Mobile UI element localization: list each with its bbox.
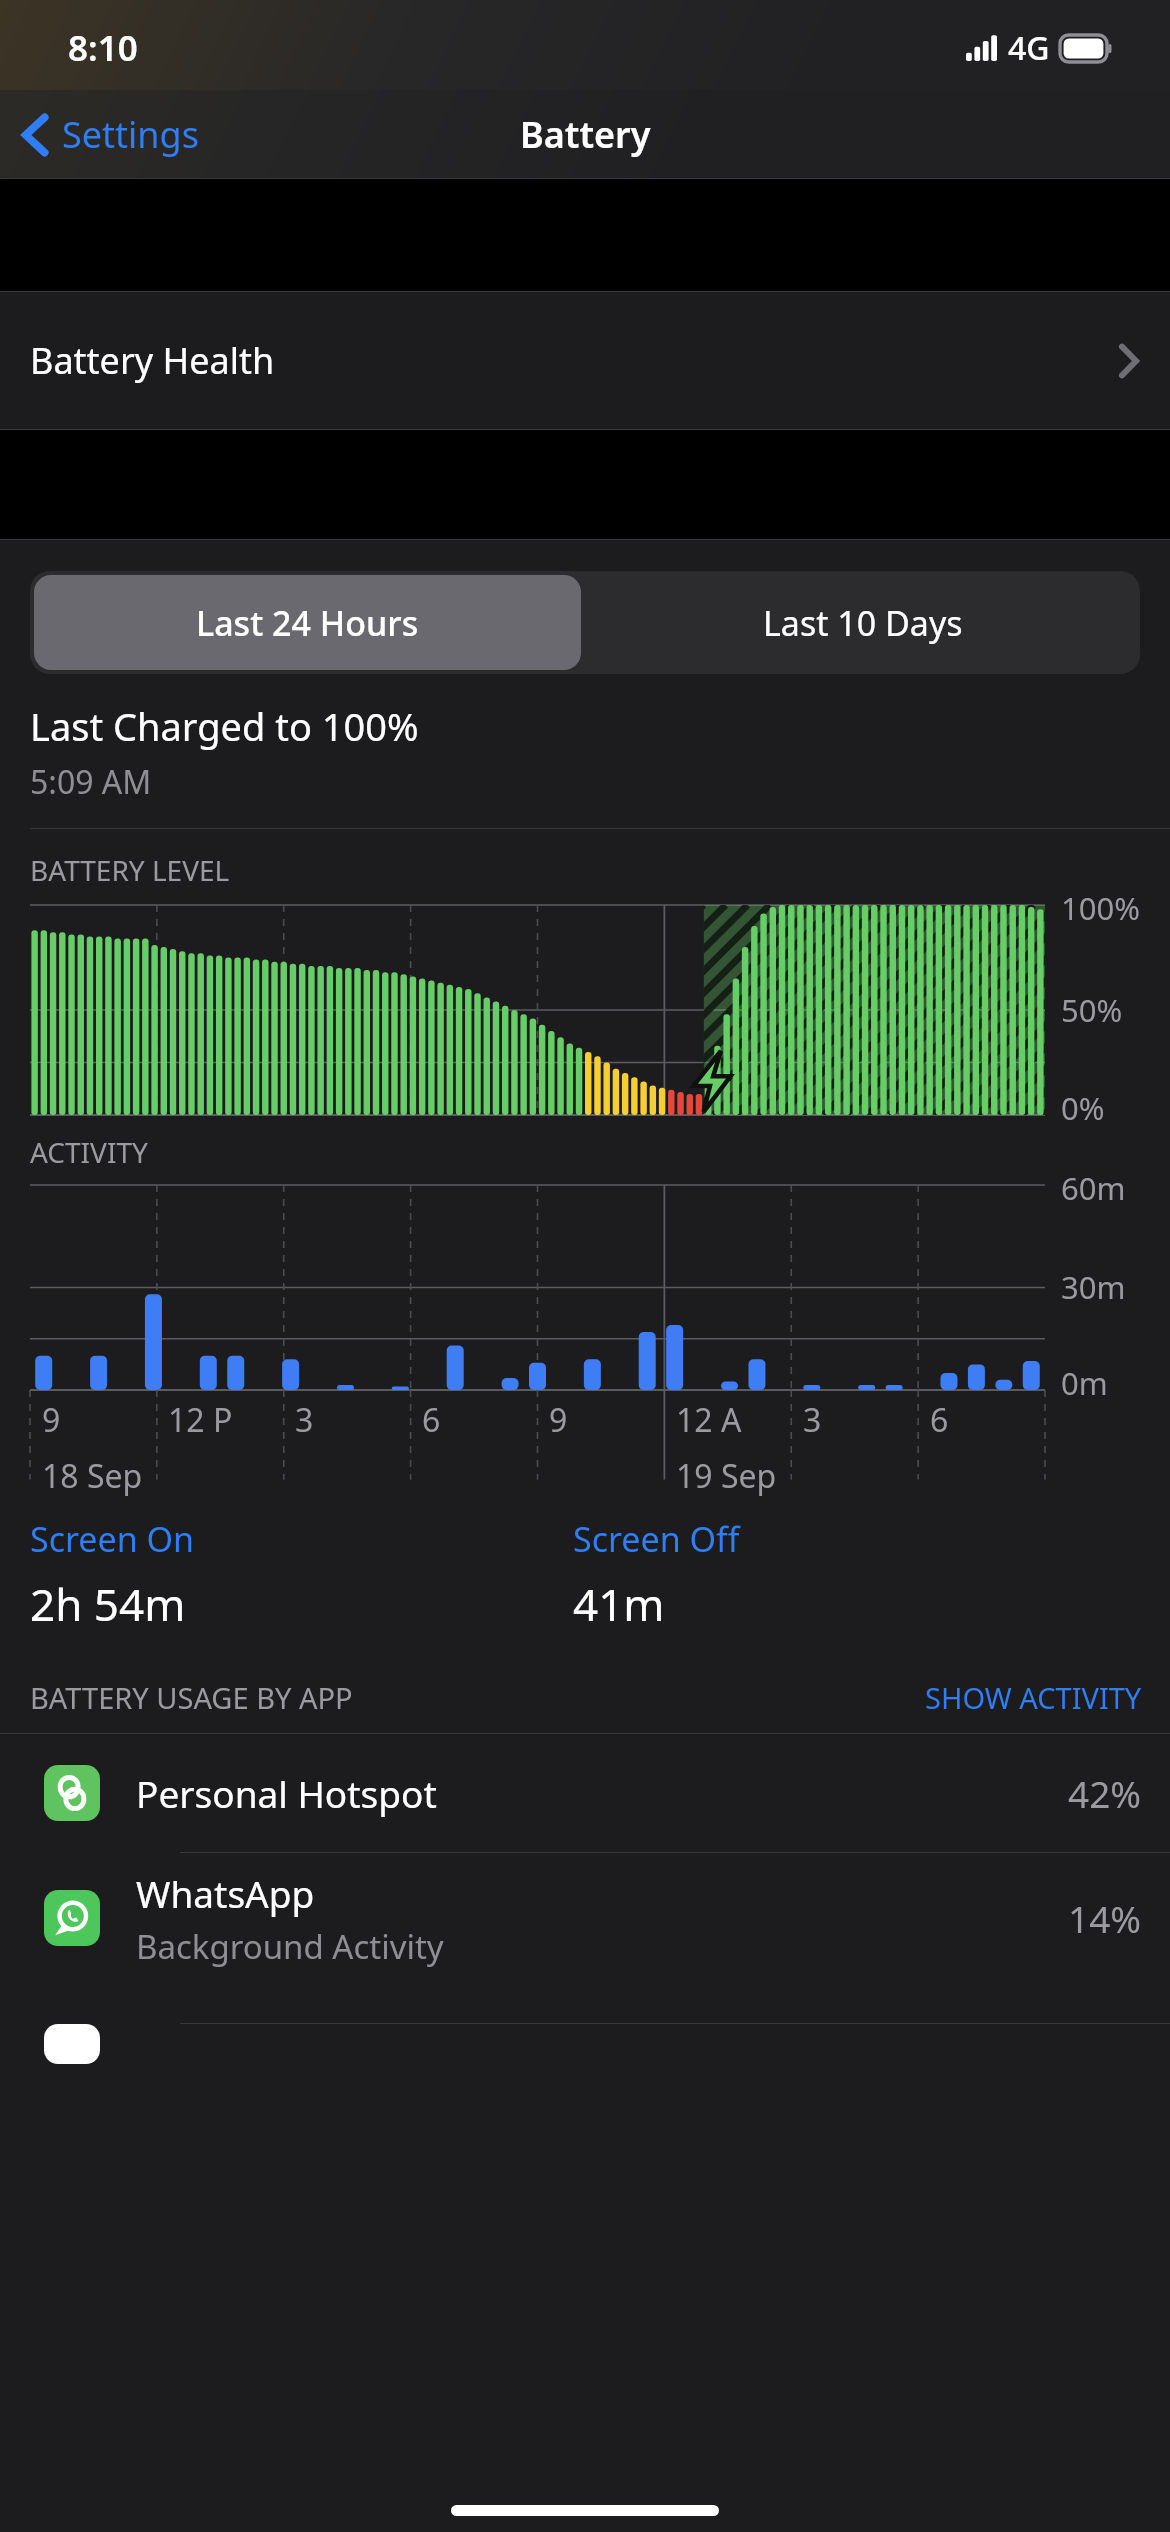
staticText: 60m [1061, 1167, 1126, 1209]
staticText: 3 [803, 1398, 822, 1442]
staticText: Screen On [30, 1516, 195, 1562]
staticText: WhatsApp [136, 1868, 315, 1918]
staticText: Settings [62, 110, 199, 159]
staticText: Screen Off [573, 1516, 740, 1562]
staticText: 6 [422, 1398, 441, 1442]
button[interactable]: Settings [0, 102, 213, 167]
staticText: 9 [549, 1398, 568, 1442]
other: Personal Hotspot [44, 1765, 100, 1821]
staticText: 9 [42, 1398, 61, 1442]
staticText: 6 [930, 1398, 949, 1442]
staticText: 12 P [168, 1398, 233, 1442]
staticText: BATTERY USAGE BY APP [30, 1678, 925, 1717]
staticText: Last Charged to 100% [30, 700, 419, 752]
staticText: 30m [1061, 1266, 1126, 1308]
staticText: SHOW ACTIVITY [925, 1678, 1142, 1717]
staticText: 0m [1061, 1362, 1108, 1404]
button[interactable]: Last 24 Hours [34, 575, 581, 670]
staticText: 50% [1061, 989, 1123, 1031]
staticText: 3 [295, 1398, 314, 1442]
staticText: 42% [1068, 1768, 1142, 1818]
button[interactable]: Battery Health [0, 292, 1170, 429]
button[interactable]: SHOW ACTIVITY [925, 1678, 1142, 1717]
staticText: 5:09 AM [30, 760, 152, 804]
button[interactable] [0, 2024, 1170, 2064]
staticText: Battery [520, 110, 651, 159]
staticText: 12 A [676, 1398, 742, 1442]
staticText: 0% [1061, 1087, 1105, 1129]
staticText: 8:10 [68, 24, 138, 72]
staticText: 18 Sep [42, 1454, 143, 1498]
staticText: 2h 54m [30, 1574, 186, 1634]
button[interactable]: WhatsApp [0, 1853, 1170, 1983]
staticText: 100% [1061, 887, 1140, 929]
staticText: Last 24 Hours [196, 600, 419, 646]
staticText: 41m [573, 1574, 665, 1634]
staticText: Last 10 Days [763, 600, 963, 646]
staticText: 4G [1008, 26, 1050, 70]
staticText: Background Activity [136, 1924, 444, 1969]
staticText: Personal Hotspot [136, 1768, 437, 1818]
staticText: 19 Sep [676, 1454, 777, 1498]
button[interactable]: Personal Hotspot [0, 1734, 1170, 1852]
other: WhatsApp [44, 1890, 100, 1946]
button[interactable]: Last 10 Days [585, 571, 1140, 674]
staticText: Battery Health [30, 336, 1118, 385]
staticText: BATTERY LEVEL [30, 851, 230, 889]
staticText: 14% [1068, 1893, 1142, 1943]
staticText: ACTIVITY [30, 1133, 148, 1171]
